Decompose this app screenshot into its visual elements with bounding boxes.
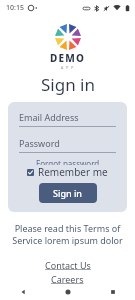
button[interactable]: Contact Us	[45, 259, 91, 271]
staticText: Email Address	[19, 111, 79, 123]
staticText: Careers	[51, 273, 84, 285]
button[interactable]: Careers	[51, 273, 84, 285]
button[interactable]: Remember me	[19, 165, 116, 179]
staticText: 10:15	[6, 3, 24, 13]
staticText: A P P	[61, 65, 75, 70]
button[interactable]: Sign in	[39, 183, 97, 203]
staticText: Sign in	[53, 187, 83, 199]
staticText: Contact Us	[45, 259, 91, 271]
button[interactable]: Home	[45, 284, 90, 300]
staticText: Forgot password	[36, 158, 100, 165]
staticText: Remember me	[38, 165, 108, 179]
button[interactable]: Back	[0, 284, 45, 300]
staticText: Please read this Terms of Service lorem …	[7, 222, 128, 247]
staticText: Sign in	[41, 73, 95, 96]
staticText: Password	[19, 137, 60, 149]
button[interactable]: Forgot password	[36, 158, 100, 165]
staticText: DEMO	[50, 51, 86, 65]
button[interactable]: Recents	[90, 284, 135, 300]
